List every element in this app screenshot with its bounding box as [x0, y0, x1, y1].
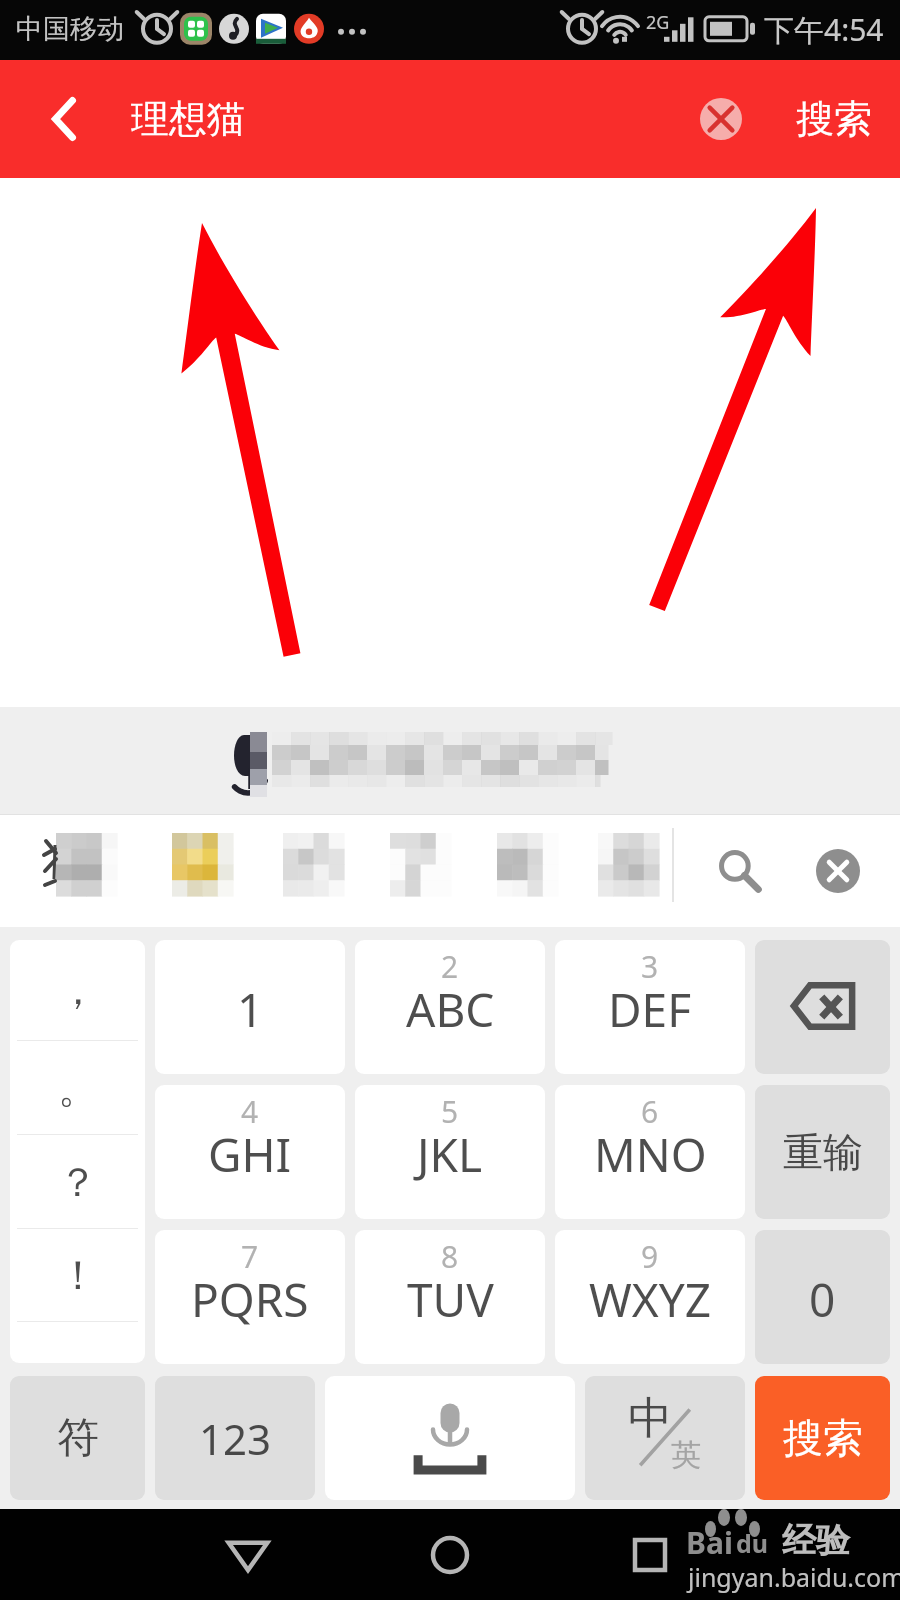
staticText: 6 [641, 1091, 659, 1132]
button[interactable]: ， [10, 940, 145, 1040]
button[interactable]: 搜索 [784, 81, 884, 157]
button[interactable]: Candidate 3 [245, 815, 355, 927]
button[interactable]: Candidate 6 [558, 815, 668, 927]
staticText: du [736, 1526, 769, 1560]
button[interactable]: 6 [555, 1085, 745, 1219]
staticText: 2G [646, 10, 670, 35]
staticText: 经验 [782, 1519, 850, 1562]
staticText: 8 [441, 1236, 459, 1277]
staticText: 符 [57, 1412, 99, 1465]
button[interactable]: Candidate 2 [135, 815, 245, 927]
button[interactable]: Back [203, 1510, 293, 1600]
staticText: JKL [417, 1123, 483, 1186]
button[interactable]: 3 [555, 940, 745, 1074]
staticText: TUV [407, 1268, 494, 1331]
staticText: 5 [441, 1091, 459, 1132]
staticText: 理想猫 [131, 95, 245, 143]
button[interactable]: 8 [355, 1230, 545, 1364]
staticText: Bai [686, 1522, 733, 1563]
staticText: ABC [406, 978, 495, 1041]
staticText: ？ [58, 1157, 98, 1207]
button[interactable]: 9 [555, 1230, 745, 1364]
button[interactable]: 重输 [755, 1085, 890, 1219]
button[interactable]: 123 [155, 1376, 315, 1500]
button[interactable]: Chinese English toggle [585, 1376, 745, 1500]
staticText: ！ [58, 1250, 98, 1300]
staticText: 中 [628, 1391, 672, 1446]
staticText: 。 [58, 1063, 98, 1113]
staticText: 1 [237, 978, 264, 1041]
button[interactable]: 7 [155, 1230, 345, 1364]
button[interactable]: ？ [10, 1135, 145, 1228]
button[interactable]: 搜索 [755, 1376, 890, 1500]
staticText: ， [58, 965, 98, 1015]
button[interactable]: 4 [155, 1085, 345, 1219]
button[interactable]: Space, voice input [325, 1376, 575, 1500]
staticText: 0 [809, 1268, 836, 1331]
button[interactable]: 5 [355, 1085, 545, 1219]
button[interactable]: 2 [355, 940, 545, 1074]
button[interactable]: Backspace [755, 940, 890, 1074]
button[interactable]: Candidate 5 [455, 815, 565, 927]
staticText: 重输 [783, 1127, 863, 1177]
staticText: 123 [199, 1410, 272, 1467]
staticText: DEF [608, 978, 692, 1041]
button[interactable]: Back [26, 81, 102, 157]
staticText: 7 [241, 1236, 259, 1277]
button[interactable]: Home [405, 1510, 495, 1600]
staticText: PQRS [191, 1268, 309, 1331]
staticText: WXYZ [589, 1268, 712, 1331]
staticText: 4 [241, 1091, 259, 1132]
button[interactable]: 符 [10, 1376, 145, 1500]
staticText: jingyan.baidu.com [688, 1560, 900, 1594]
button[interactable]: 。 [10, 1041, 145, 1134]
button[interactable]: ！ [10, 1229, 145, 1321]
button[interactable]: Recent apps [605, 1510, 695, 1600]
staticText: 搜索 [796, 95, 872, 143]
staticText: MNO [594, 1123, 707, 1186]
button[interactable]: Close keyboard [799, 832, 877, 910]
staticText: GHI [208, 1123, 292, 1186]
button[interactable]: 1 [155, 940, 345, 1074]
staticText: 英 [671, 1436, 701, 1474]
button[interactable]: Candidate 1 [18, 815, 128, 927]
staticText: 2 [441, 946, 459, 987]
staticText: 3 [641, 946, 659, 987]
staticText: 中国移动 [16, 12, 124, 46]
staticText: 下午4:54 [764, 9, 884, 50]
button[interactable]: Search [700, 832, 778, 910]
staticText: 9 [641, 1236, 659, 1277]
button[interactable]: Clear text [683, 81, 759, 157]
staticText: 搜索 [783, 1413, 863, 1463]
button[interactable]: Candidate 4 [352, 815, 462, 927]
button[interactable]: 0 [755, 1230, 890, 1364]
